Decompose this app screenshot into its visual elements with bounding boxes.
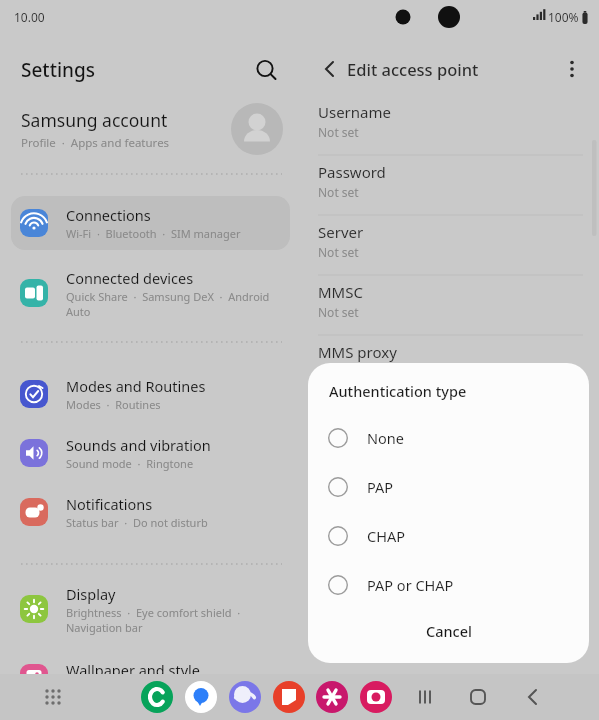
button[interactable]: None [308, 417, 589, 459]
button[interactable]: Wallpaper and style [11, 651, 290, 705]
button[interactable]: Cancel [308, 609, 589, 663]
staticText: Modes · Routines [66, 397, 161, 412]
staticText: 100% [548, 9, 579, 25]
button[interactable]: Display [11, 578, 290, 640]
button[interactable]: Apps [40, 684, 66, 710]
staticText: Server [318, 222, 364, 242]
staticText: Authentication type [329, 381, 467, 401]
button[interactable]: PAP [308, 466, 589, 508]
staticText: CHAP [367, 526, 405, 546]
button[interactable]: Notifications [11, 485, 290, 539]
staticText: Wallpaper · Color palette [66, 681, 200, 696]
staticText: Cancel [426, 621, 472, 641]
button[interactable]: PAP or CHAP [308, 564, 589, 606]
staticText: PAP [367, 477, 394, 497]
staticText: Sounds and vibration [66, 435, 211, 455]
button[interactable]: Sounds and vibration [11, 426, 290, 480]
staticText: Password [318, 162, 386, 182]
button[interactable]: Server [299, 216, 599, 276]
staticText: Quick Share · Samsung DeX · Android [66, 289, 270, 304]
staticText: Wallpaper and style [66, 660, 200, 680]
staticText: Not set [318, 124, 359, 140]
button[interactable]: Connected devices [11, 262, 290, 324]
button[interactable]: Back [518, 684, 544, 710]
staticText: MMS proxy [318, 342, 397, 362]
staticText: Username [318, 102, 391, 122]
staticText: Not set [318, 184, 359, 200]
button[interactable]: Password [299, 156, 599, 216]
button[interactable]: Samsung account [0, 98, 299, 160]
button[interactable]: Username [299, 96, 599, 156]
staticText: Display [66, 584, 116, 604]
button[interactable]: Back [315, 56, 341, 82]
staticText: 10.00 [14, 9, 45, 25]
staticText: Connections [66, 205, 151, 225]
staticText: Not set [318, 304, 359, 320]
staticText: MMSC [318, 282, 363, 302]
staticText: Not set [318, 244, 359, 260]
staticText: Navigation bar [66, 620, 143, 635]
staticText: PAP or CHAP [367, 575, 454, 595]
button[interactable]: MMS proxy [299, 336, 599, 396]
button[interactable]: Home [465, 684, 491, 710]
staticText: Samsung account [21, 108, 168, 132]
staticText: Profile · Apps and features [21, 135, 170, 151]
button[interactable]: Search [249, 53, 283, 87]
staticText: Notifications [66, 494, 153, 514]
staticText: Connected devices [66, 268, 194, 288]
staticText: Sound mode · Ringtone [66, 456, 194, 471]
staticText: Wi-Fi · Bluetooth · SIM manager [66, 226, 241, 241]
button[interactable]: More options [559, 56, 585, 82]
staticText: Edit access point [347, 58, 479, 80]
staticText: Modes and Routines [66, 376, 206, 396]
button[interactable]: CHAP [308, 515, 589, 557]
staticText: Settings [21, 57, 95, 83]
staticText: Auto [66, 304, 91, 319]
staticText: Brightness · Eye comfort shield · [66, 605, 241, 620]
button[interactable]: Recents [412, 684, 438, 710]
button[interactable]: MMSC [299, 276, 599, 336]
button[interactable]: Connections [11, 196, 290, 250]
staticText: None [367, 428, 404, 448]
button[interactable]: Modes and Routines [11, 367, 290, 421]
staticText: Status bar · Do not disturb [66, 515, 208, 530]
staticText: Not set [318, 364, 359, 380]
